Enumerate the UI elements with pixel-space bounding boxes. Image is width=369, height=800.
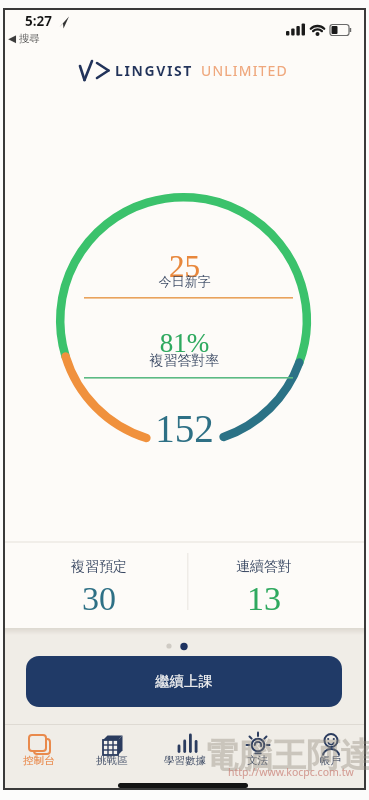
button[interactable]: ◀ 搜尋: [8, 31, 68, 49]
staticText: 今日新字: [0, 273, 369, 289]
staticText: 文法: [247, 754, 268, 767]
staticText: LINGVIST: [115, 61, 193, 80]
staticText: 連續答對: [236, 558, 292, 576]
staticText: 學習數據: [164, 754, 206, 767]
button[interactable]: 文法: [221, 730, 294, 767]
staticText: 帳戶: [320, 754, 341, 767]
button[interactable]: 連續答對: [189, 558, 339, 618]
staticText: 挑戰區: [96, 754, 128, 767]
staticText: UNLIMITED: [201, 61, 288, 80]
button[interactable]: 帳戶: [294, 730, 367, 767]
staticText: 13: [247, 580, 281, 618]
staticText: 繼續上課: [155, 673, 213, 691]
staticText: 81%: [0, 328, 369, 358]
staticText: ◀ 搜尋: [8, 31, 40, 45]
button[interactable]: 複習預定: [24, 558, 174, 618]
staticText: 152: [0, 407, 369, 450]
staticText: http://www.kocpc.com.tw: [228, 765, 354, 779]
button[interactable]: 學習數據: [148, 730, 221, 767]
staticText: 5:27: [25, 12, 52, 30]
staticText: 複習答對率: [0, 352, 369, 370]
button[interactable]: 控制台: [2, 730, 75, 767]
staticText: 25: [0, 249, 369, 283]
button[interactable]: 繼續上課: [26, 656, 342, 707]
staticText: 30: [82, 580, 116, 618]
staticText: 複習預定: [71, 558, 127, 576]
staticText: 控制台: [23, 754, 55, 767]
button[interactable]: 挑戰區: [75, 730, 148, 767]
staticText: 電腦王阿達: [204, 734, 369, 777]
